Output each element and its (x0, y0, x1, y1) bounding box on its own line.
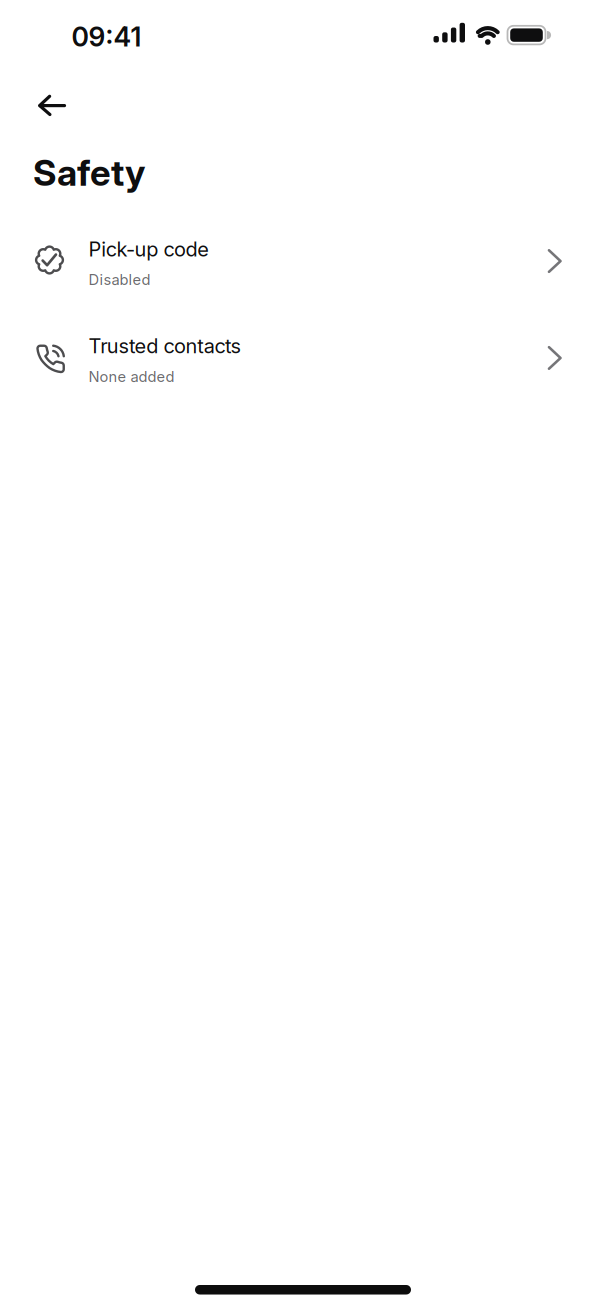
button[interactable]: Trusted contacts (0, 313, 603, 409)
staticText: Pick-up code (89, 237, 209, 261)
staticText: Safety (33, 151, 145, 194)
button[interactable]: Back (30, 87, 75, 125)
button[interactable]: Pick-up code (0, 216, 603, 312)
staticText: Trusted contacts (89, 334, 241, 358)
staticText: None added (89, 368, 175, 385)
staticText: 09:41 (71, 21, 141, 52)
staticText: Disabled (89, 271, 151, 288)
